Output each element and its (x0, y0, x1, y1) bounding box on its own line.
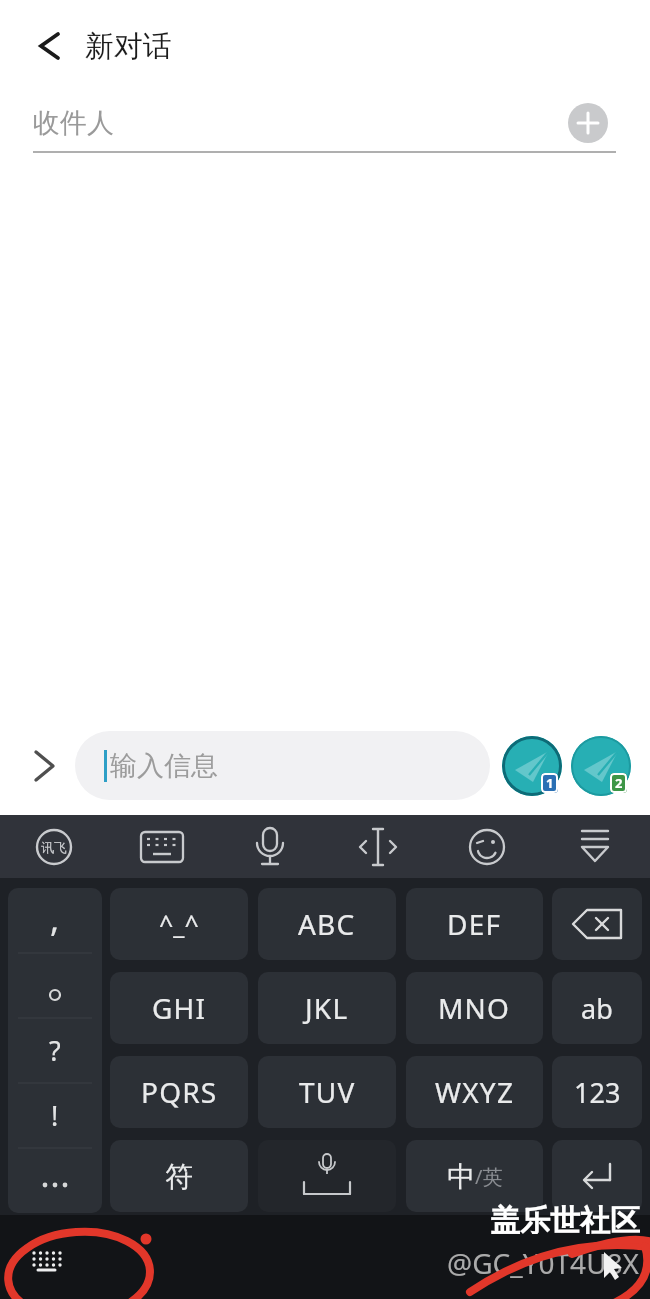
staticText: TUV (299, 1073, 356, 1111)
button[interactable]: DEF (406, 888, 543, 960)
button[interactable]: 中 (406, 1140, 543, 1212)
staticText: ab (581, 990, 613, 1027)
staticText: 123 (574, 1074, 621, 1111)
button[interactable] (552, 888, 642, 960)
button[interactable] (216, 815, 324, 878)
button[interactable] (22, 740, 66, 792)
button[interactable]: 讯飞 (0, 815, 108, 878)
staticText: ABC (298, 905, 356, 943)
button[interactable]: ABC (258, 888, 396, 960)
button[interactable]: GHI (110, 972, 248, 1044)
staticText: 讯飞 (41, 839, 67, 855)
staticText: ! (51, 1097, 59, 1134)
staticText: PQRS (141, 1073, 218, 1111)
button[interactable] (433, 815, 541, 878)
staticText: 2 (615, 774, 623, 792)
button[interactable]: TUV (258, 1056, 396, 1128)
button[interactable]: ^_^ (110, 888, 248, 960)
staticText: WXYZ (435, 1073, 515, 1111)
staticText: 输入信息 (110, 749, 218, 783)
staticText: GHI (152, 989, 207, 1027)
button[interactable] (28, 24, 72, 68)
button[interactable] (324, 815, 432, 878)
staticText: 符 (165, 1159, 193, 1194)
button[interactable] (571, 736, 631, 796)
button[interactable] (568, 103, 608, 143)
button[interactable]: MNO (406, 972, 543, 1044)
button[interactable]: ab (552, 972, 642, 1044)
button[interactable] (502, 736, 562, 796)
staticText: ^_^ (159, 907, 199, 941)
button[interactable]: WXYZ (406, 1056, 543, 1128)
staticText: /英 (475, 1163, 503, 1190)
button[interactable]: JKL (258, 972, 396, 1044)
button[interactable] (552, 1140, 642, 1212)
staticText: MNO (438, 989, 511, 1027)
button[interactable]: 符 (110, 1140, 248, 1212)
staticText: JKL (305, 989, 349, 1027)
staticText: DEF (447, 905, 502, 943)
button[interactable]: 输入信息 (75, 731, 490, 800)
staticText: 新对话 (85, 28, 172, 65)
staticText: ? (49, 1032, 61, 1069)
button[interactable]: PQRS (110, 1056, 248, 1128)
staticText: @GC_Y0T4U8X (447, 1244, 640, 1278)
button[interactable] (108, 815, 216, 878)
staticText: 收件人 (33, 106, 114, 140)
button[interactable] (541, 815, 649, 878)
button[interactable]: , (8, 888, 102, 1213)
button[interactable]: 123 (552, 1056, 642, 1128)
staticText: 盖乐世社区 (490, 1202, 640, 1234)
button[interactable] (18, 1238, 78, 1284)
staticText: 中 (447, 1159, 475, 1194)
staticText: , (50, 896, 60, 942)
button[interactable] (258, 1140, 396, 1212)
staticText: 1 (546, 774, 554, 792)
